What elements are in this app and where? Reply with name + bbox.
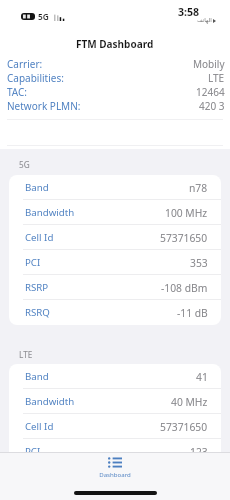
staticText: RSRP xyxy=(25,281,49,294)
staticText: -11 dB xyxy=(177,306,208,320)
button[interactable]: Cell Id xyxy=(9,225,221,250)
button[interactable]: Dashboard xyxy=(89,454,141,481)
staticText: Mobily xyxy=(193,57,225,71)
staticText: Carrier: xyxy=(7,57,43,71)
staticText: PCI xyxy=(25,445,41,458)
staticText: Band xyxy=(25,370,49,383)
staticText: الهاتف xyxy=(197,17,212,24)
staticText: Network PLMN: xyxy=(7,99,81,113)
staticText: 353 xyxy=(190,256,208,270)
button[interactable]: Bandwidth xyxy=(9,200,221,225)
staticText: 420 3 xyxy=(199,99,225,113)
staticText: 12464 xyxy=(196,85,225,99)
staticText: Band xyxy=(25,181,49,194)
other: Dashboard xyxy=(108,457,122,468)
staticText: TAC: xyxy=(7,85,28,99)
staticText: Capabilities: xyxy=(7,71,64,85)
staticText: 5G xyxy=(38,11,49,22)
staticText: Bandwidth xyxy=(25,395,75,408)
staticText: LTE xyxy=(208,71,225,85)
staticText: FTM Dashboard xyxy=(76,37,154,51)
staticText: 3:58 xyxy=(178,5,200,19)
button[interactable]: Bandwidth xyxy=(9,389,221,414)
button[interactable]: Cell Id xyxy=(9,414,221,439)
staticText: RSRQ xyxy=(25,306,50,319)
button[interactable]: Band xyxy=(9,364,221,389)
staticText: n78 xyxy=(189,181,208,195)
staticText: 40 MHz xyxy=(171,395,208,409)
button[interactable]: RSRQ xyxy=(9,300,221,325)
staticText: PCI xyxy=(25,256,41,269)
staticText: 57371650 xyxy=(160,231,208,245)
button[interactable]: RSRP xyxy=(9,275,221,300)
staticText: -108 dBm xyxy=(161,281,208,295)
staticText: Cell Id xyxy=(25,420,54,433)
staticText: 41 xyxy=(196,370,208,384)
button[interactable]: PCI xyxy=(9,250,221,275)
staticText: Cell Id xyxy=(25,231,54,244)
staticText: 123 xyxy=(190,445,208,459)
button[interactable]: PCI xyxy=(9,439,221,464)
staticText: Dashboard xyxy=(99,470,131,478)
staticText: 57371650 xyxy=(160,420,208,434)
staticText: Bandwidth xyxy=(25,206,75,219)
button[interactable]: Band xyxy=(9,175,221,200)
staticText: 5G xyxy=(19,159,30,170)
staticText: 100 MHz xyxy=(165,206,208,220)
staticText: LTE xyxy=(19,349,33,360)
